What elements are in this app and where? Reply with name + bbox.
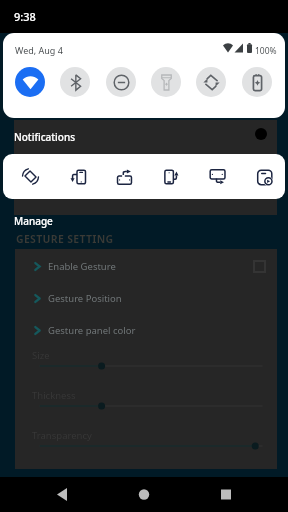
staticText: Gesture Position (48, 292, 122, 305)
button[interactable]: Do not disturb (106, 67, 136, 97)
button[interactable]: Internet (15, 67, 45, 97)
button[interactable]: Rotate screen (14, 160, 46, 192)
button[interactable]: Enable Gesture checkbox (254, 261, 265, 272)
button[interactable]: Clear all notifications (255, 128, 267, 140)
staticText: 9:38 (14, 9, 36, 24)
button[interactable]: Gesture Position (15, 282, 277, 314)
button[interactable]: Wed, Aug 4 (15, 44, 63, 56)
button[interactable]: Share screen (108, 160, 140, 192)
staticText: Thickness (32, 389, 76, 402)
button[interactable]: Enable Gesture (15, 250, 277, 282)
staticText: Enable Gesture (48, 260, 116, 273)
button[interactable]: Notifications (14, 130, 76, 144)
button[interactable]: Cast to TV (201, 160, 233, 192)
button[interactable]: Flashlight (151, 67, 181, 97)
button[interactable]: Manage (14, 214, 53, 228)
staticText: Transparency (32, 429, 92, 442)
button[interactable]: Auto rotate (196, 67, 226, 97)
button[interactable]: Transparency slider (15, 439, 277, 453)
button[interactable]: Cast to phone (61, 160, 93, 192)
staticText: 100% (255, 45, 277, 57)
button[interactable]: Back (38, 477, 86, 512)
button[interactable]: Home (120, 477, 168, 512)
button[interactable]: Gesture panel color (15, 314, 277, 346)
button[interactable]: Bluetooth (60, 67, 90, 97)
staticText: Size (32, 349, 50, 362)
button[interactable]: Battery saver (242, 67, 272, 97)
staticText: GESTURE SETTING (16, 232, 114, 246)
button[interactable]: Recent apps (202, 477, 250, 512)
staticText: Gesture panel color (48, 324, 136, 337)
button[interactable]: Move to device (155, 160, 187, 192)
button[interactable]: Size slider (15, 359, 277, 373)
button[interactable]: Record screen (248, 160, 280, 192)
button[interactable]: Thickness slider (15, 399, 277, 413)
